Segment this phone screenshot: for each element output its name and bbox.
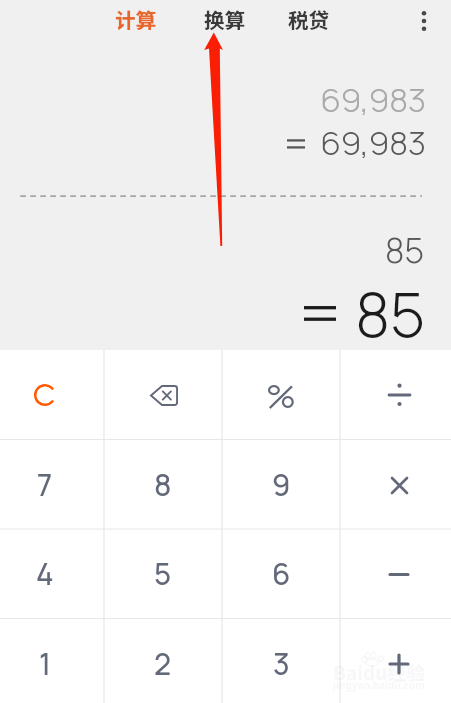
staticText: 计算 — [115, 4, 156, 34]
button[interactable]: 8 — [104, 440, 222, 530]
button[interactable]: 1 — [0, 619, 104, 703]
staticText: 8 — [154, 465, 172, 505]
button[interactable]: More options — [404, 1, 444, 41]
staticText: 69,983 — [126, 77, 426, 122]
staticText: 85 — [124, 227, 424, 273]
staticText: 85 — [125, 272, 425, 355]
button[interactable]: 3 — [222, 619, 340, 703]
button[interactable]: Minus — [340, 529, 451, 619]
staticText: % — [266, 373, 296, 418]
staticText: jingyan.baidu.com — [333, 678, 425, 692]
staticText: 换算 — [204, 4, 245, 34]
staticText: 69,983 — [126, 120, 426, 165]
staticText: 税贷 — [288, 4, 329, 34]
button[interactable]: 9 — [222, 440, 340, 530]
staticText: 4 — [36, 554, 54, 594]
button[interactable]: Backspace — [104, 350, 222, 440]
button[interactable]: Multiply — [340, 440, 451, 530]
staticText: 5 — [154, 554, 172, 594]
button[interactable]: Divide — [340, 350, 451, 440]
staticText: 1 — [39, 644, 51, 684]
button[interactable]: 税贷 — [272, 0, 344, 39]
button[interactable]: 5 — [104, 529, 222, 619]
button[interactable]: Percent — [222, 350, 340, 440]
staticText: Baidu经验 — [333, 658, 426, 686]
button[interactable]: Clear — [0, 350, 104, 440]
button[interactable]: 计算 — [99, 0, 171, 39]
button[interactable]: 7 — [0, 440, 104, 530]
button[interactable]: 6 — [222, 529, 340, 619]
staticText: 6 — [272, 554, 291, 594]
staticText: 9 — [272, 465, 291, 505]
button[interactable]: 2 — [104, 619, 222, 703]
button[interactable]: 4 — [0, 529, 104, 619]
staticText: 3 — [273, 644, 290, 684]
staticText: 2 — [154, 644, 172, 684]
button[interactable]: 换算 — [188, 0, 260, 39]
staticText: 7 — [37, 465, 53, 505]
button[interactable]: Plus — [340, 619, 451, 703]
